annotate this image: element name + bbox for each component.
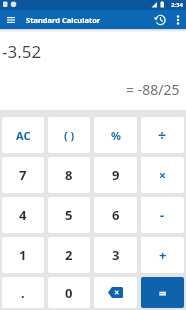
- button[interactable]: 9: [94, 157, 137, 193]
- button[interactable]: 2: [48, 237, 90, 273]
- staticText: 6: [112, 206, 120, 224]
- staticText: ×: [159, 167, 166, 183]
- button[interactable]: 5: [48, 197, 90, 233]
- button[interactable]: [152, 12, 168, 28]
- staticText: 5: [65, 206, 73, 224]
- button[interactable]: +: [141, 237, 184, 273]
- staticText: 4: [19, 206, 27, 224]
- button[interactable]: [94, 277, 137, 308]
- staticText: Standard Calculator: [26, 15, 101, 25]
- staticText: 9: [112, 166, 120, 184]
- staticText: 0: [65, 284, 73, 302]
- staticText: 2:34: [171, 1, 183, 9]
- button[interactable]: 4: [2, 197, 44, 233]
- staticText: =: [159, 284, 167, 302]
- staticText: = -88/25: [126, 80, 180, 99]
- staticText: AC: [16, 128, 31, 143]
- staticText: 8: [65, 166, 73, 184]
- button[interactable]: 3: [94, 237, 137, 273]
- button[interactable]: =: [141, 277, 184, 308]
- staticText: -: [160, 206, 165, 224]
- button[interactable]: ×: [141, 157, 184, 193]
- button[interactable]: 6: [94, 197, 137, 233]
- button[interactable]: -: [141, 197, 184, 233]
- staticText: ( ): [64, 128, 75, 143]
- staticText: -3.52: [2, 40, 42, 63]
- staticText: %: [111, 128, 121, 143]
- button[interactable]: AC: [2, 117, 44, 153]
- button[interactable]: %: [94, 117, 137, 153]
- button[interactable]: 1: [2, 237, 44, 273]
- button[interactable]: [4, 13, 18, 27]
- button[interactable]: [172, 14, 184, 26]
- staticText: ÷: [158, 126, 167, 145]
- button[interactable]: 7: [2, 157, 44, 193]
- staticText: .: [21, 284, 25, 302]
- button[interactable]: ( ): [48, 117, 90, 153]
- button[interactable]: 8: [48, 157, 90, 193]
- button[interactable]: 0: [48, 277, 90, 308]
- staticText: 1: [19, 246, 27, 264]
- staticText: +: [159, 246, 167, 264]
- staticText: 7: [19, 166, 27, 184]
- staticText: 2: [65, 246, 73, 264]
- staticText: 3: [112, 246, 120, 264]
- button[interactable]: .: [2, 277, 44, 308]
- button[interactable]: ÷: [141, 117, 184, 153]
